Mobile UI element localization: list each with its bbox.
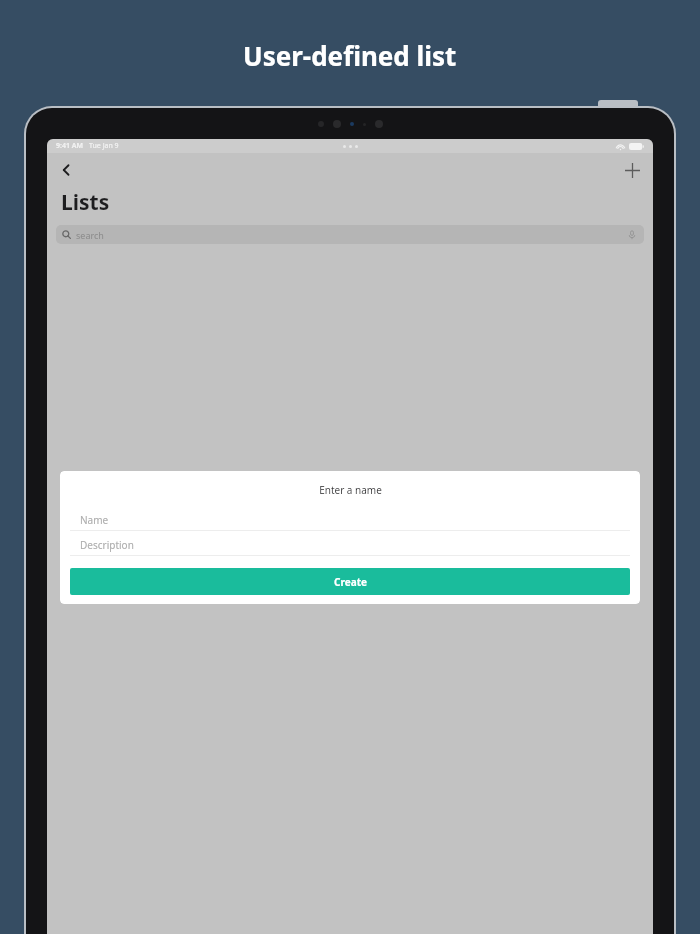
- staticText: Enter a name: [319, 483, 382, 497]
- button[interactable]: search: [56, 225, 644, 244]
- staticText: 9:41 AM: [56, 141, 83, 151]
- staticText: Description: [80, 538, 134, 552]
- button[interactable]: Add list: [617, 155, 647, 185]
- button[interactable]: Description: [61, 535, 639, 560]
- staticText: User-defined list: [243, 38, 457, 73]
- staticText: Tue Jan 9: [89, 141, 119, 151]
- button[interactable]: Name: [61, 510, 639, 535]
- button[interactable]: Back: [51, 155, 81, 185]
- staticText: Lists: [61, 188, 110, 217]
- staticText: Name: [80, 513, 109, 527]
- button[interactable]: Create: [70, 568, 630, 595]
- staticText: Create: [334, 575, 367, 589]
- staticText: search: [76, 229, 626, 241]
- button[interactable]: Voice search: [626, 229, 638, 241]
